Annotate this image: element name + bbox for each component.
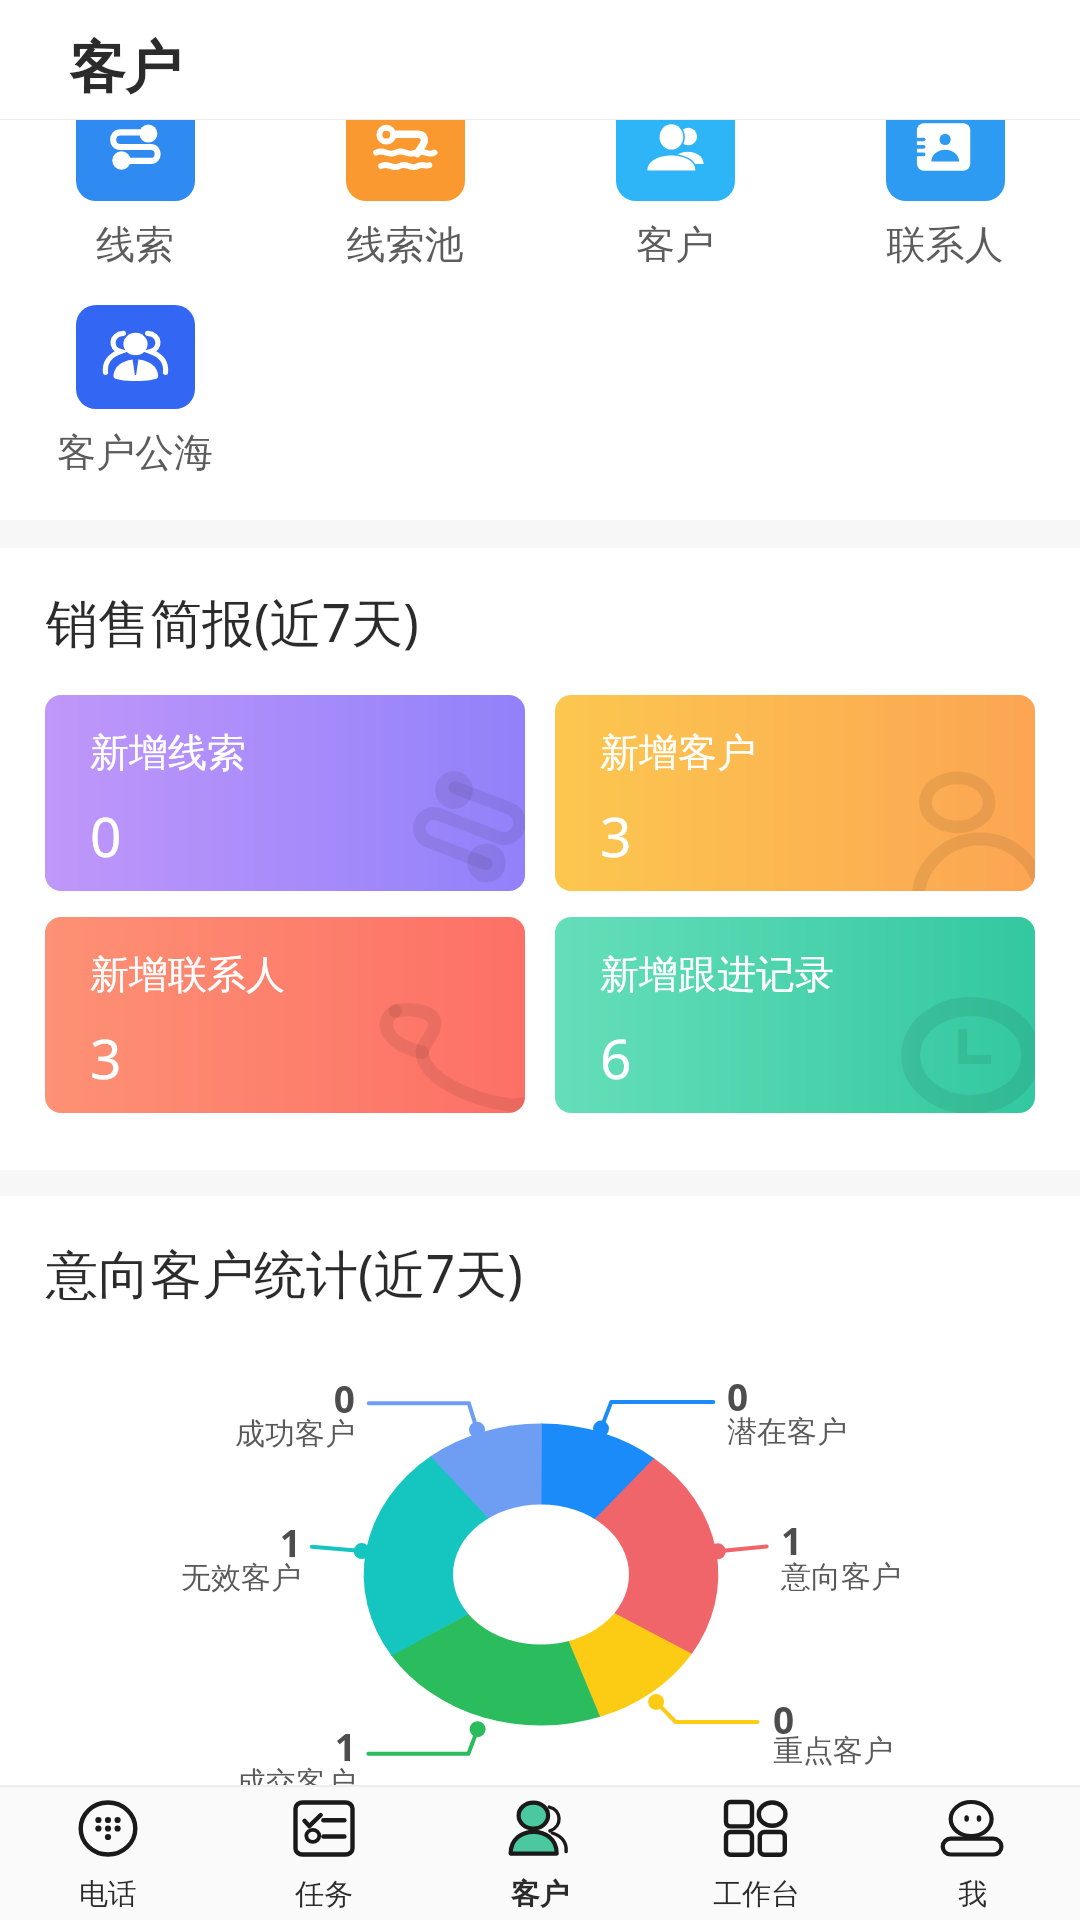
- staticText: 客户: [540, 220, 810, 269]
- staticText: 客户: [69, 33, 181, 104]
- button[interactable]: 我: [864, 1787, 1080, 1913]
- staticText: 销售简报(近7天): [46, 586, 419, 657]
- staticText: 我: [958, 1876, 987, 1913]
- button[interactable]: 客户: [432, 1787, 648, 1913]
- staticText: 客户: [511, 1876, 569, 1913]
- staticText: 任务: [295, 1876, 353, 1913]
- staticText: 线索池: [270, 220, 540, 269]
- button[interactable]: 新增线索: [45, 695, 525, 891]
- staticText: 工作台: [713, 1876, 800, 1913]
- button[interactable]: 新增联系人: [45, 917, 525, 1113]
- button[interactable]: 电话: [0, 1787, 216, 1913]
- staticText: 电话: [79, 1876, 137, 1913]
- staticText: 3: [90, 1020, 122, 1095]
- staticText: 联系人: [810, 220, 1080, 269]
- button[interactable]: 新增跟进记录: [555, 917, 1035, 1113]
- staticText: 1: [0, 1517, 301, 1567]
- staticText: 3: [600, 798, 632, 873]
- button[interactable]: 联系人: [810, 120, 1080, 460]
- staticText: 0: [727, 1371, 749, 1421]
- button[interactable]: 任务: [216, 1787, 432, 1913]
- staticText: 6: [600, 1020, 632, 1095]
- button[interactable]: 线索池: [270, 120, 540, 460]
- staticText: 成功客户: [35, 1415, 355, 1453]
- button[interactable]: 客户: [540, 120, 810, 460]
- staticText: 线索: [0, 220, 270, 269]
- staticText: 无效客户: [0, 1559, 301, 1597]
- staticText: 新增跟进记录: [600, 950, 834, 999]
- button[interactable]: 新增客户: [555, 695, 1035, 891]
- staticText: 意向客户: [781, 1558, 901, 1596]
- button[interactable]: 线索: [0, 120, 270, 460]
- staticText: 客户公海: [0, 428, 270, 477]
- staticText: 潜在客户: [727, 1413, 847, 1451]
- button[interactable]: 客户公海: [0, 120, 270, 460]
- button[interactable]: 工作台: [648, 1787, 864, 1913]
- staticText: 成交客户: [36, 1764, 356, 1802]
- staticText: 意向客户统计(近7天): [46, 1237, 523, 1308]
- staticText: 0: [773, 1694, 795, 1744]
- staticText: 1: [36, 1721, 356, 1771]
- staticText: 1: [781, 1515, 803, 1565]
- staticText: 新增线索: [90, 728, 246, 777]
- staticText: 0: [35, 1373, 355, 1423]
- staticText: 重点客户: [773, 1732, 893, 1770]
- staticText: 0: [90, 798, 122, 873]
- staticText: 新增客户: [600, 728, 756, 777]
- staticText: 新增联系人: [90, 950, 285, 999]
